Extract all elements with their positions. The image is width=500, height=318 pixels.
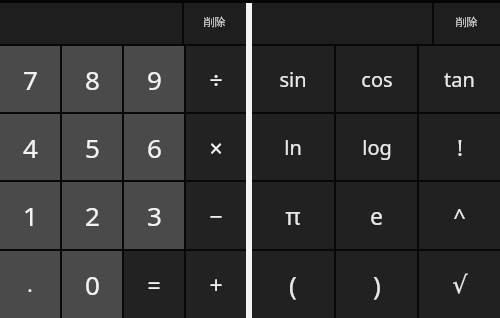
button[interactable]: 2 <box>62 182 122 249</box>
button[interactable]: ) <box>336 251 417 318</box>
staticText: tan <box>444 66 475 93</box>
button[interactable]: ( <box>252 251 334 318</box>
staticText: ( <box>289 267 297 302</box>
staticText: 6 <box>147 130 162 165</box>
button[interactable]: 7 <box>0 46 60 112</box>
button[interactable]: Delete <box>434 0 500 44</box>
staticText: ! <box>457 132 463 162</box>
staticText: 8 <box>85 62 100 97</box>
button[interactable]: − <box>186 182 246 249</box>
button[interactable]: . <box>0 251 60 318</box>
button[interactable]: ÷ <box>186 46 246 112</box>
staticText: 9 <box>147 62 162 97</box>
button[interactable]: × <box>186 114 246 180</box>
button[interactable]: π <box>252 182 334 249</box>
button[interactable]: tan <box>419 46 500 112</box>
staticText: . <box>27 271 33 298</box>
button[interactable]: 4 <box>0 114 60 180</box>
staticText: − <box>209 200 223 231</box>
button[interactable]: cos <box>336 46 417 112</box>
staticText: ÷ <box>209 64 223 95</box>
button[interactable]: Delete <box>184 0 246 44</box>
button[interactable]: ! <box>419 114 500 180</box>
staticText: cos <box>361 66 393 93</box>
button[interactable]: 6 <box>124 114 184 180</box>
staticText: 1 <box>23 198 38 233</box>
button[interactable]: 3 <box>124 182 184 249</box>
staticText: sin <box>279 66 307 93</box>
button[interactable]: 0 <box>62 251 122 318</box>
button[interactable]: 1 <box>0 182 60 249</box>
button[interactable]: sin <box>252 46 334 112</box>
staticText: 削除 <box>456 15 478 29</box>
staticText: 7 <box>23 62 38 97</box>
staticText: = <box>147 269 161 300</box>
button[interactable]: e <box>336 182 417 249</box>
button[interactable]: log <box>336 114 417 180</box>
staticText: 5 <box>85 130 100 165</box>
staticText: log <box>362 134 392 161</box>
staticText: 3 <box>147 198 162 233</box>
staticText: × <box>209 132 223 163</box>
button[interactable]: 9 <box>124 46 184 112</box>
staticText: ln <box>284 134 302 161</box>
staticText: 2 <box>85 198 100 233</box>
button[interactable]: 8 <box>62 46 122 112</box>
staticText: 0 <box>85 267 100 302</box>
button[interactable]: ^ <box>419 182 500 249</box>
button[interactable]: √ <box>419 251 500 318</box>
button[interactable]: ln <box>252 114 334 180</box>
staticText: 削除 <box>204 15 226 29</box>
staticText: + <box>209 269 223 300</box>
staticText: e <box>370 200 383 231</box>
staticText: ^ <box>453 201 466 231</box>
button[interactable]: = <box>124 251 184 318</box>
staticText: 4 <box>23 130 38 165</box>
staticText: √ <box>452 271 468 299</box>
staticText: ) <box>373 267 381 302</box>
button[interactable]: 5 <box>62 114 122 180</box>
button[interactable]: + <box>186 251 246 318</box>
staticText: π <box>285 200 301 231</box>
